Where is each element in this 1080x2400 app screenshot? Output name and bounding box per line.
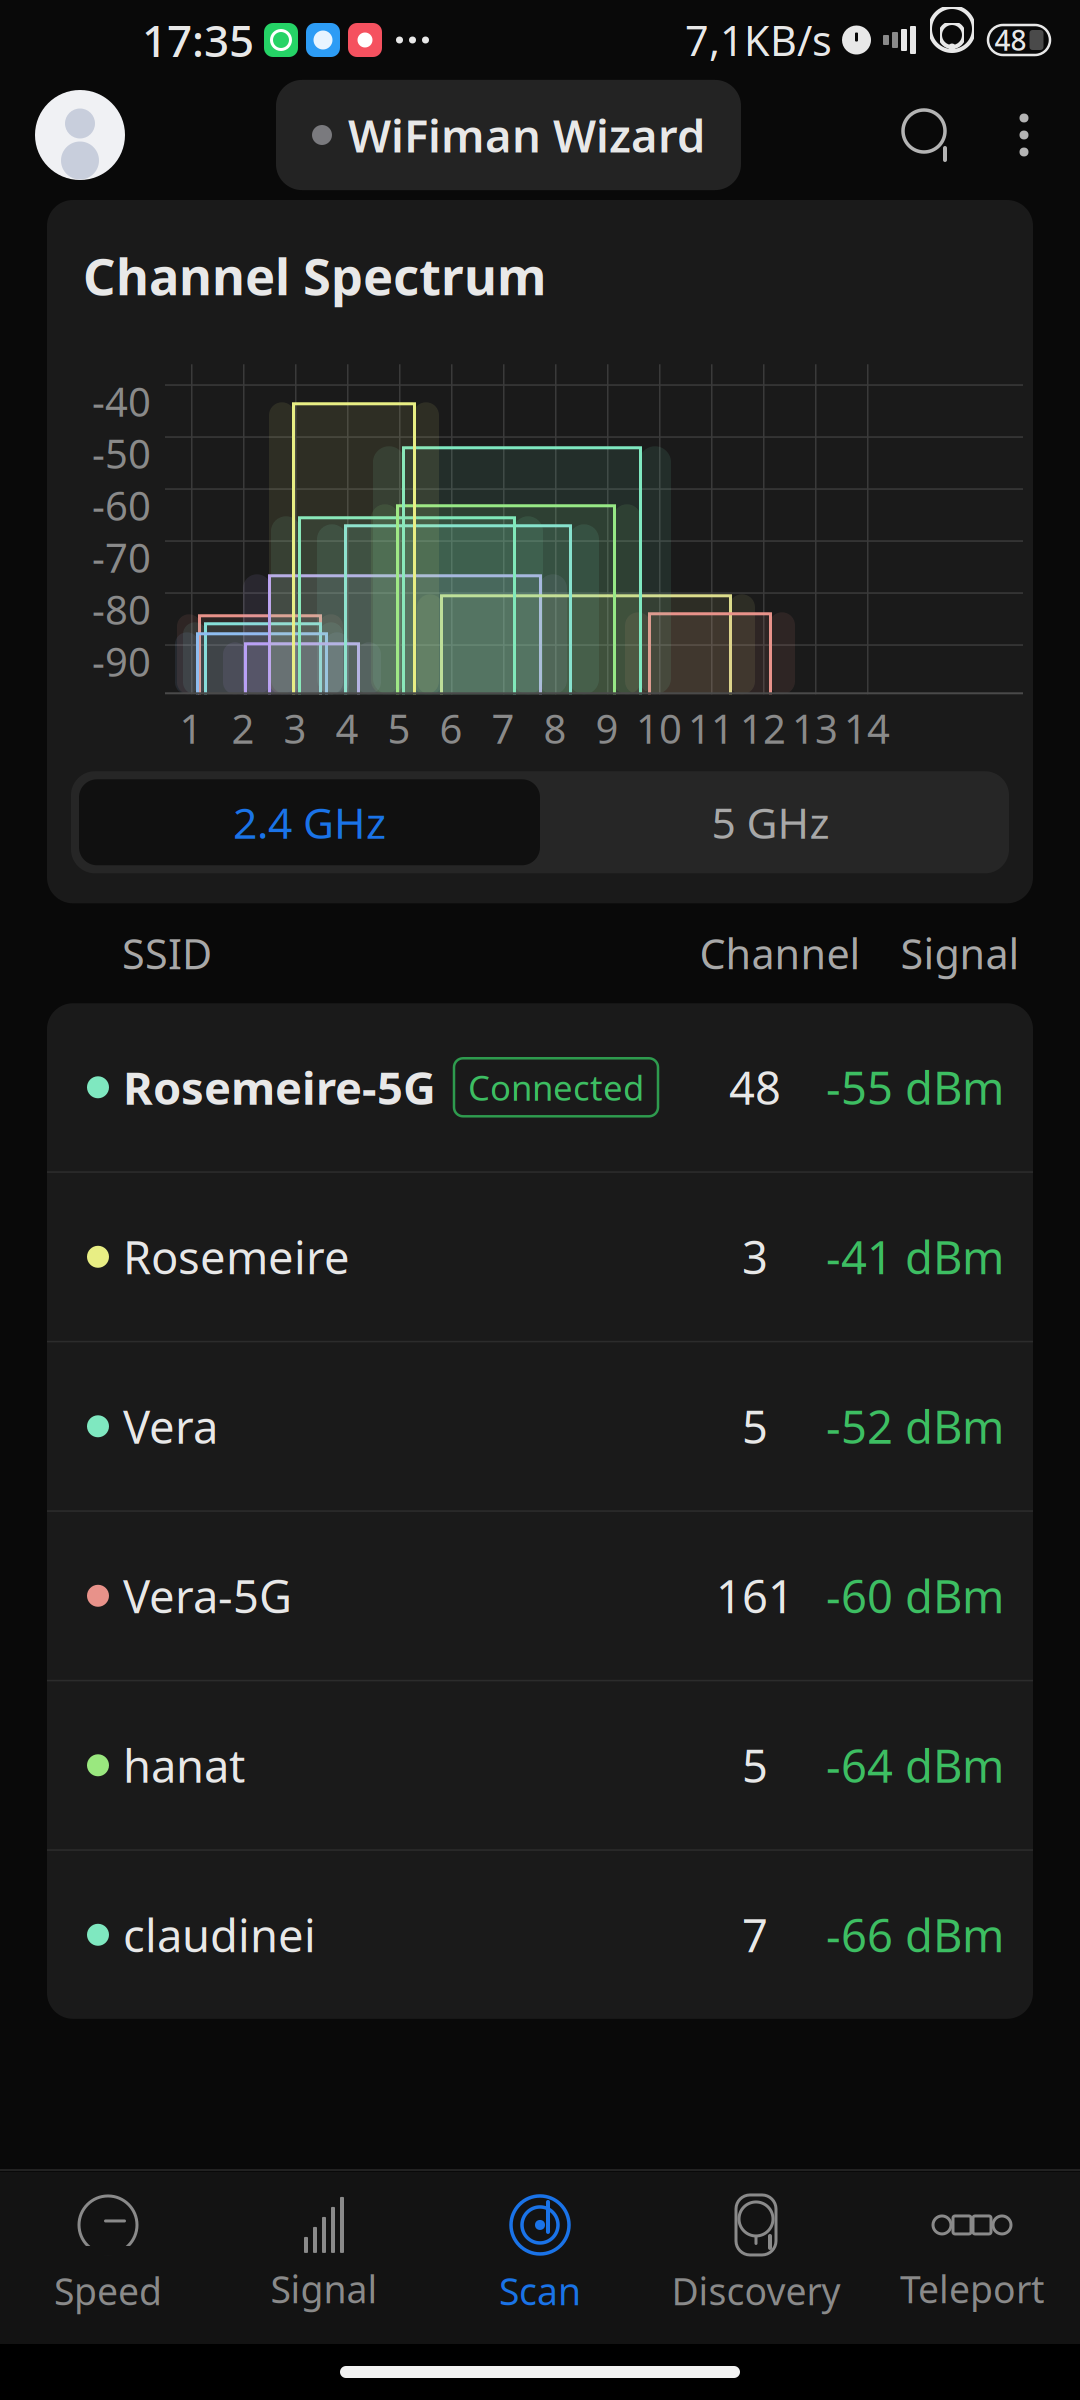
- button[interactable]: Vera: [47, 1342, 1033, 1510]
- staticText: -55 dBm: [826, 1057, 1004, 1117]
- staticText: WiFiman Wizard: [348, 105, 705, 165]
- staticText: Rosemeire: [123, 1227, 350, 1287]
- staticText: -50: [92, 427, 151, 480]
- staticText: 2.4 GHz: [233, 794, 386, 851]
- button[interactable]: Profile: [35, 90, 125, 180]
- staticText: 11: [688, 702, 734, 755]
- button[interactable]: Vera-5G: [47, 1512, 1033, 1680]
- staticText: 10: [636, 702, 682, 755]
- button[interactable]: 5 GHz: [540, 779, 1001, 865]
- staticText: 12: [740, 702, 786, 755]
- button[interactable]: Discovery: [648, 2171, 864, 2339]
- staticText: 161: [716, 1566, 794, 1626]
- staticText: 14: [844, 702, 890, 755]
- staticText: 9: [595, 702, 618, 755]
- staticText: Signal: [900, 926, 1019, 981]
- staticText: 7: [742, 1905, 768, 1965]
- staticText: -90: [92, 635, 151, 688]
- staticText: 7: [491, 702, 514, 755]
- button[interactable]: Teleport: [864, 2171, 1080, 2339]
- staticText: 2: [231, 702, 254, 755]
- staticText: Speed: [54, 2266, 162, 2316]
- staticText: Discovery: [671, 2266, 840, 2316]
- staticText: 13: [792, 702, 838, 755]
- staticText: 3: [742, 1227, 768, 1287]
- staticText: Teleport: [900, 2264, 1044, 2314]
- staticText: 8: [543, 702, 566, 755]
- button[interactable]: claudinei: [47, 1851, 1033, 2019]
- button[interactable]: Rosemeire: [47, 1173, 1033, 1341]
- button[interactable]: Speed: [0, 2171, 216, 2339]
- staticText: SSID: [122, 926, 212, 981]
- staticText: Channel Spectrum: [83, 242, 546, 309]
- staticText: -60: [92, 479, 151, 532]
- staticText: -80: [92, 583, 151, 636]
- button[interactable]: WiFiman Wizard: [276, 80, 741, 190]
- staticText: hanat: [123, 1735, 245, 1795]
- button[interactable]: Search: [892, 99, 964, 171]
- button[interactable]: More options: [992, 99, 1056, 171]
- staticText: 1: [179, 702, 202, 755]
- staticText: -70: [92, 531, 151, 584]
- button[interactable]: Rosemeire-5G: [47, 1003, 1033, 1171]
- staticText: 48: [994, 21, 1026, 59]
- staticText: 6: [439, 702, 462, 755]
- staticText: 7,1KB/s: [685, 13, 832, 67]
- staticText: Vera-5G: [123, 1566, 292, 1626]
- button[interactable]: 2.4 GHz: [79, 779, 540, 865]
- staticText: Scan: [499, 2266, 581, 2316]
- staticText: 5: [742, 1735, 768, 1795]
- staticText: -60 dBm: [826, 1566, 1004, 1626]
- staticText: -52 dBm: [826, 1396, 1004, 1456]
- staticText: Rosemeire-5G: [123, 1057, 436, 1117]
- staticText: -40: [92, 375, 151, 428]
- staticText: Connected: [468, 1064, 644, 1110]
- button[interactable]: Scan: [432, 2171, 648, 2339]
- staticText: 5: [742, 1396, 768, 1456]
- staticText: 5: [387, 702, 410, 755]
- staticText: 3: [283, 702, 306, 755]
- staticText: claudinei: [123, 1905, 316, 1965]
- staticText: Vera: [123, 1396, 218, 1456]
- button[interactable]: Signal: [216, 2171, 432, 2339]
- staticText: 4: [335, 702, 358, 755]
- staticText: 5 GHz: [711, 794, 829, 851]
- staticText: 17:35: [142, 11, 254, 69]
- staticText: Channel: [699, 926, 860, 981]
- button[interactable]: hanat: [47, 1681, 1033, 1849]
- staticText: 48: [729, 1057, 781, 1117]
- staticText: -41 dBm: [826, 1227, 1004, 1287]
- staticText: -64 dBm: [826, 1735, 1004, 1795]
- staticText: Signal: [270, 2264, 377, 2314]
- staticText: -66 dBm: [826, 1905, 1004, 1965]
